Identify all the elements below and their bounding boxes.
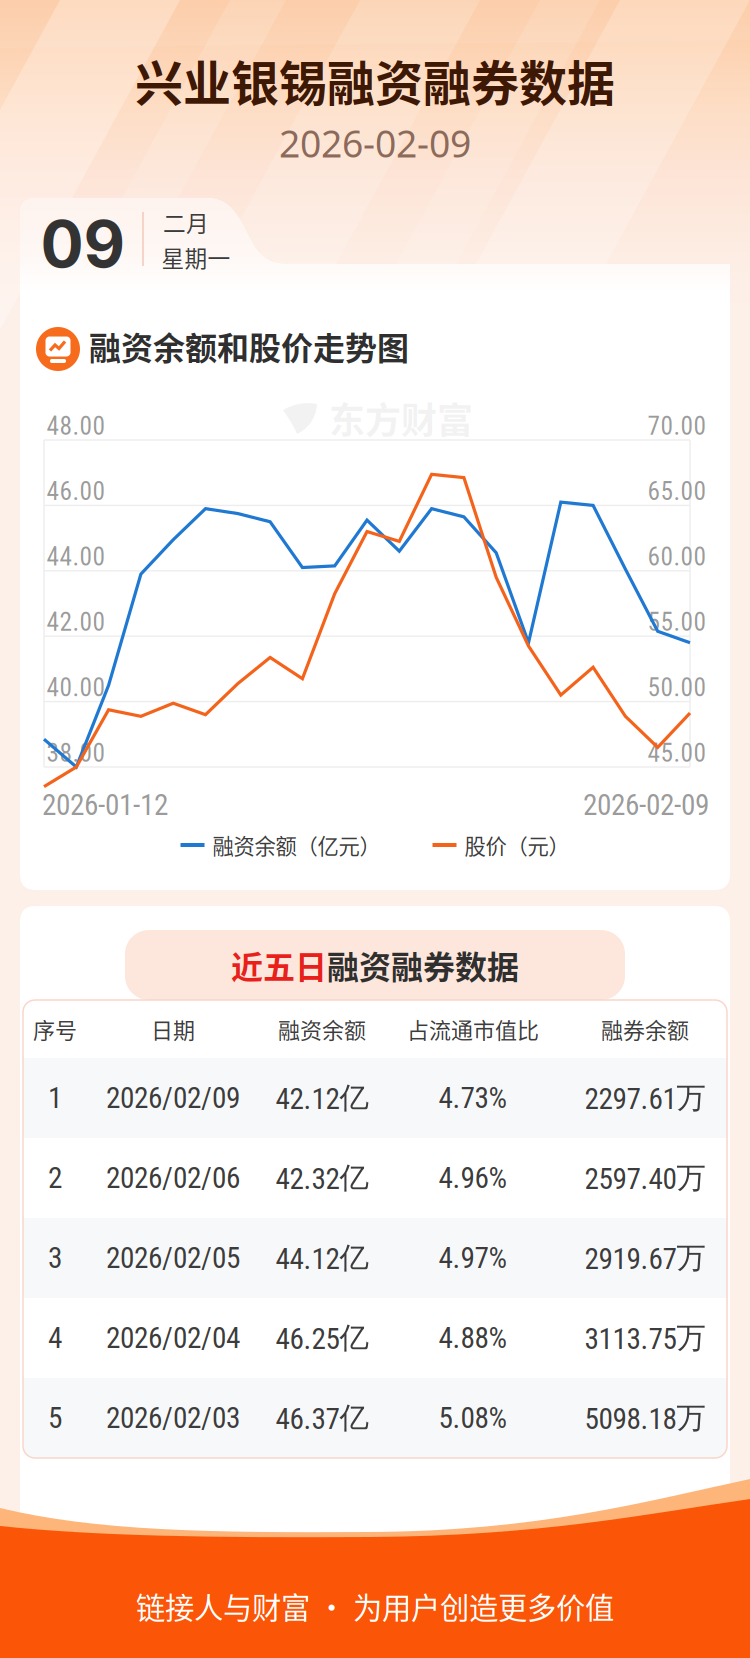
staticText: 46.25亿 xyxy=(275,1319,368,1356)
staticText: 股价（元） xyxy=(464,830,569,860)
staticText: 2026-01-12 xyxy=(42,788,168,822)
staticText: 融券余额 xyxy=(601,1013,689,1045)
staticText: 近五日 xyxy=(231,942,327,988)
staticText: 65.00 xyxy=(647,477,706,506)
staticText: 4.88% xyxy=(438,1321,507,1355)
staticText: 2597.40万 xyxy=(584,1159,705,1196)
staticText: 星期一 xyxy=(161,241,230,273)
staticText: 60.00 xyxy=(647,542,706,572)
staticText: 融资余额和股价走势图 xyxy=(89,323,409,369)
staticText: 4.96% xyxy=(438,1161,507,1195)
staticText: 兴业银锡融资融券数据 xyxy=(135,45,615,115)
staticText: 46.37亿 xyxy=(275,1399,368,1436)
staticText: 序号 xyxy=(33,1013,77,1045)
staticText: 48.00 xyxy=(46,411,105,441)
staticText: 3 xyxy=(48,1241,62,1275)
staticText: 2 xyxy=(48,1161,62,1195)
staticText: 42.12亿 xyxy=(275,1079,368,1116)
staticText: 5 xyxy=(48,1401,62,1435)
staticText: 2026-02-09 xyxy=(583,788,709,822)
staticText: 55.00 xyxy=(647,607,706,637)
staticText: 融资余额（亿元） xyxy=(212,830,380,860)
staticText: 44.00 xyxy=(46,542,105,572)
staticText: 2026/02/05 xyxy=(106,1241,240,1275)
staticText: 5.08% xyxy=(438,1401,507,1435)
staticText: 42.00 xyxy=(46,607,105,637)
staticText: 5098.18万 xyxy=(584,1399,705,1436)
staticText: 1 xyxy=(48,1081,62,1115)
staticText: 4 xyxy=(48,1321,62,1355)
staticText: 融资余额 xyxy=(278,1013,366,1045)
staticText: 4.73% xyxy=(438,1081,507,1115)
staticText: 2026/02/04 xyxy=(106,1321,240,1355)
staticText: 50.00 xyxy=(647,673,706,702)
staticText: 2919.67万 xyxy=(584,1239,705,1276)
staticText: 2297.61万 xyxy=(584,1079,705,1116)
staticText: 链接人与财富 · 为用户创造更多价值 xyxy=(136,1585,614,1627)
staticText: 38.00 xyxy=(46,738,105,768)
staticText: 40.00 xyxy=(46,673,105,702)
staticText: 2026/02/03 xyxy=(106,1401,240,1435)
staticText: 2026/02/09 xyxy=(106,1081,240,1115)
staticText: 70.00 xyxy=(647,411,706,441)
staticText: 3113.75万 xyxy=(584,1319,705,1356)
staticText: 东方财富 xyxy=(329,1216,473,1268)
staticText: 46.00 xyxy=(46,477,105,506)
staticText: 东方财富 xyxy=(329,392,473,444)
staticText: 42.32亿 xyxy=(275,1159,368,1196)
staticText: 45.00 xyxy=(647,738,706,768)
staticText: 二月 xyxy=(163,206,209,238)
staticText: 2026-02-09 xyxy=(279,118,471,168)
staticText: 09 xyxy=(40,205,125,283)
staticText: 融资融券数据 xyxy=(327,942,519,988)
staticText: 占流通市值比 xyxy=(407,1013,539,1045)
staticText: 44.12亿 xyxy=(275,1239,368,1276)
staticText: 日期 xyxy=(151,1013,195,1045)
staticText: 2026/02/06 xyxy=(106,1161,240,1195)
staticText: 4.97% xyxy=(438,1241,507,1275)
